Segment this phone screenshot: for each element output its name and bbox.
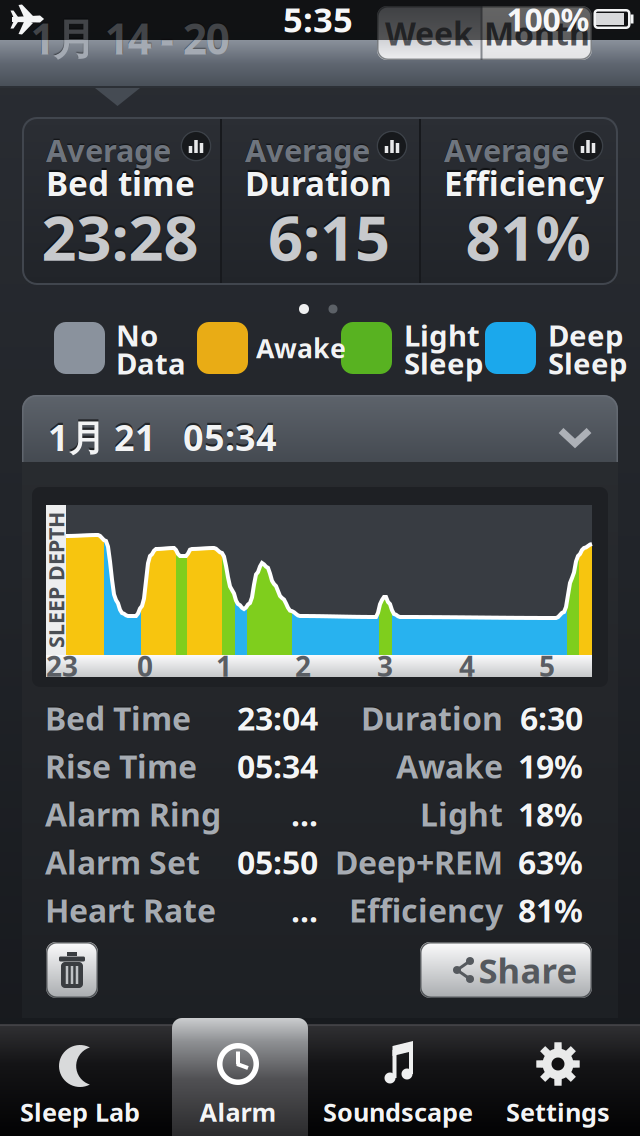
staticText: Deep+REM xyxy=(335,841,503,883)
staticText: 3 xyxy=(377,647,393,685)
staticText: Data xyxy=(116,343,186,382)
staticText: 6:30 xyxy=(520,697,583,739)
staticText: Soundscape xyxy=(323,1095,473,1129)
staticText: 81% xyxy=(518,889,583,931)
button[interactable]: Week xyxy=(377,6,481,60)
staticText: 23:04 xyxy=(237,697,318,739)
staticText: 6:15 xyxy=(268,196,390,278)
staticText: 5:35 xyxy=(283,0,353,42)
button[interactable]: 1月 14 - 20 xyxy=(30,10,230,66)
staticText: 63% xyxy=(518,841,583,883)
button[interactable]: Alarm xyxy=(0,0,640,1136)
staticText: Light xyxy=(420,793,503,835)
staticText: 1月 21 05:34 xyxy=(48,413,277,461)
staticText: Alarm xyxy=(199,1095,276,1129)
staticText: Rise Time xyxy=(45,745,197,787)
staticText: 19% xyxy=(518,745,583,787)
staticText: 5 xyxy=(539,647,555,685)
staticText: Alarm Ring xyxy=(45,793,221,835)
staticText: Sleep xyxy=(404,343,484,382)
staticText: 05:34 xyxy=(237,745,318,787)
staticText: Duration xyxy=(361,697,503,739)
staticText: 23 xyxy=(46,647,78,685)
button[interactable] xyxy=(46,942,98,998)
staticText: Week xyxy=(385,12,473,54)
button[interactable]: Settings xyxy=(0,0,640,1136)
staticText: Awake xyxy=(256,330,346,366)
staticText: 05:50 xyxy=(237,841,318,883)
button[interactable]: Soundscape xyxy=(0,0,640,1136)
staticText: Deep xyxy=(548,315,624,354)
button[interactable] xyxy=(376,130,407,161)
staticText: 81% xyxy=(465,196,590,278)
staticText: Month xyxy=(484,12,590,54)
staticText: 18% xyxy=(518,793,583,835)
staticText: Bed Time xyxy=(45,697,191,739)
staticText: No xyxy=(116,315,158,354)
button[interactable] xyxy=(180,130,211,161)
staticText: 4 xyxy=(459,647,475,685)
staticText: SLEEP DEPTH xyxy=(0,566,124,594)
staticText: Duration xyxy=(245,161,392,205)
staticText: 100% xyxy=(506,0,589,40)
button[interactable] xyxy=(572,130,603,161)
staticText: 2 xyxy=(295,647,311,685)
staticText: Settings xyxy=(506,1095,610,1129)
staticText: ... xyxy=(291,793,318,835)
button[interactable]: Month xyxy=(482,6,592,60)
staticText: Efficiency xyxy=(349,889,503,931)
button[interactable]: Sleep Lab xyxy=(0,0,640,1136)
button[interactable] xyxy=(561,430,589,443)
staticText: 23:28 xyxy=(41,196,198,278)
staticText: Average xyxy=(46,130,171,170)
staticText: Average xyxy=(245,130,370,170)
staticText: Light xyxy=(404,315,480,354)
staticText: Average xyxy=(444,130,569,170)
staticText: 1月 14 - 20 xyxy=(30,10,230,66)
staticText: Bed time xyxy=(46,161,195,205)
staticText: Awake xyxy=(396,745,503,787)
staticText: ... xyxy=(291,889,318,931)
staticText: Alarm Set xyxy=(45,841,200,883)
staticText: Sleep Lab xyxy=(20,1095,140,1129)
staticText: 0 xyxy=(137,647,153,685)
staticText: Sleep xyxy=(548,343,628,382)
staticText: 1 xyxy=(216,647,232,685)
staticText: Efficiency xyxy=(444,161,604,205)
button[interactable]: Share xyxy=(420,942,592,998)
staticText: Heart Rate xyxy=(45,889,216,931)
staticText: Share xyxy=(478,947,577,993)
